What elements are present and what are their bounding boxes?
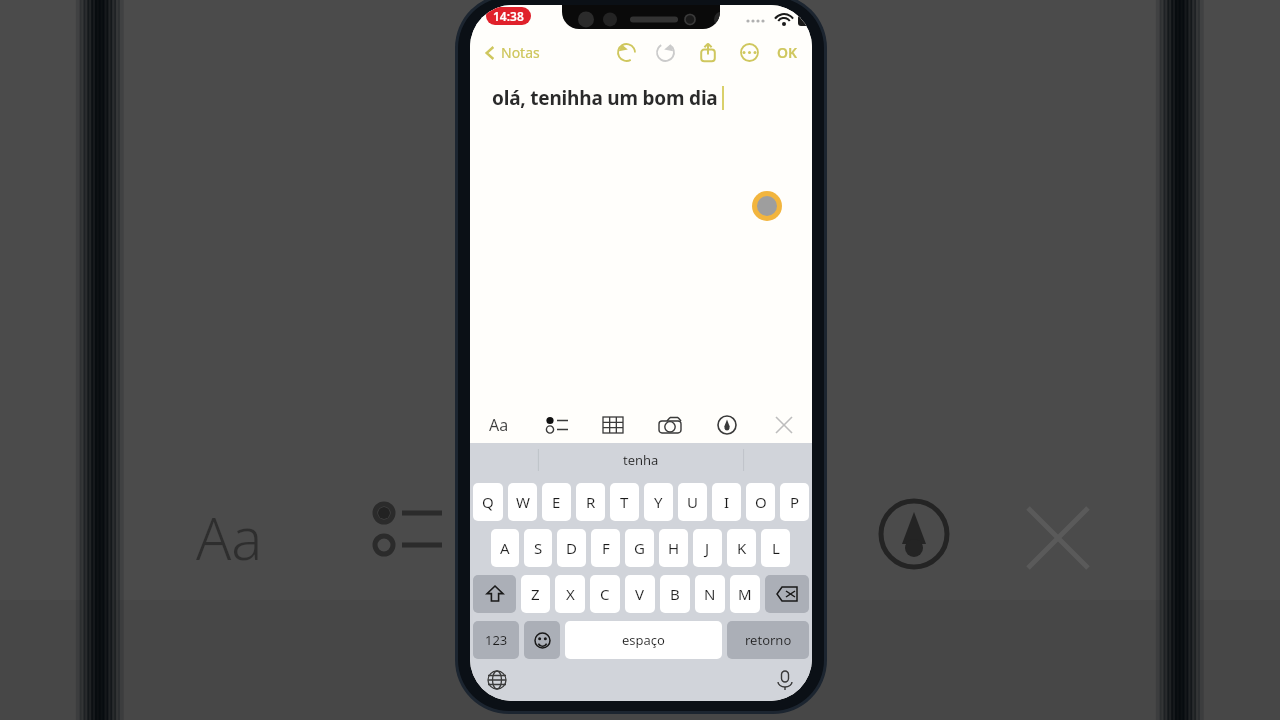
staticText: Aa — [196, 498, 263, 577]
button[interactable]: Close keyboard — [755, 407, 812, 443]
button[interactable]: Undo — [612, 38, 640, 66]
button[interactable]: F — [591, 529, 620, 567]
button[interactable]: retorno — [727, 621, 809, 659]
staticText: 123 — [485, 631, 508, 649]
button[interactable]: A — [491, 529, 519, 567]
button[interactable]: Backspace — [765, 575, 809, 613]
button[interactable]: K — [727, 529, 756, 567]
button[interactable]: Emoji — [524, 621, 560, 659]
staticText: I — [724, 492, 730, 512]
staticText: N — [704, 584, 716, 604]
staticText: 14:38 — [493, 8, 524, 24]
staticText: A — [500, 538, 510, 558]
button[interactable]: D — [557, 529, 586, 567]
button[interactable]: Dictate — [768, 663, 802, 697]
staticText: T — [620, 492, 629, 512]
button[interactable]: G — [625, 529, 654, 567]
button[interactable]: C — [590, 575, 620, 613]
button[interactable]: Shift — [473, 575, 516, 613]
button[interactable]: R — [576, 483, 605, 521]
button[interactable]: B — [660, 575, 690, 613]
staticText: R — [586, 492, 596, 512]
staticText: V — [635, 584, 645, 604]
button[interactable]: Y — [644, 483, 673, 521]
button[interactable]: V — [625, 575, 655, 613]
staticText: olá, tenihha um bom dia — [492, 85, 718, 111]
staticText: H — [668, 538, 680, 558]
staticText: W — [516, 492, 530, 512]
button[interactable]: 123 — [473, 621, 519, 659]
button[interactable]: N — [695, 575, 725, 613]
staticText: OK — [777, 43, 798, 62]
button[interactable]: U — [678, 483, 707, 521]
staticText: U — [687, 492, 698, 512]
staticText: C — [600, 584, 610, 604]
staticText: F — [602, 538, 610, 558]
button[interactable]: L — [761, 529, 790, 567]
button[interactable]: J — [693, 529, 722, 567]
staticText: E — [552, 492, 561, 512]
staticText: O — [755, 492, 767, 512]
staticText: L — [772, 538, 780, 558]
button[interactable]: Change keyboard — [480, 663, 514, 697]
staticText: Y — [654, 492, 663, 512]
staticText: P — [790, 492, 800, 512]
button[interactable]: Redo — [651, 38, 679, 66]
staticText: J — [705, 538, 710, 558]
staticText: G — [634, 538, 645, 558]
staticText: Q — [482, 492, 494, 512]
staticText: D — [566, 538, 577, 558]
staticText: X — [566, 584, 575, 604]
staticText: retorno — [745, 631, 792, 649]
staticText: Z — [531, 584, 540, 604]
button[interactable]: Q — [473, 483, 503, 521]
button[interactable]: Markup — [698, 407, 755, 443]
button[interactable]: Share — [694, 38, 722, 66]
button[interactable]: W — [508, 483, 537, 521]
button[interactable]: Checklist — [527, 407, 584, 443]
button[interactable]: espaço — [565, 621, 722, 659]
staticText: Notas — [501, 43, 540, 62]
button[interactable]: OK — [773, 39, 802, 66]
button[interactable]: O — [746, 483, 775, 521]
button[interactable]: Z — [521, 575, 550, 613]
button[interactable]: More options — [735, 38, 763, 66]
button[interactable]: tenha — [599, 445, 683, 475]
button[interactable]: Camera — [641, 407, 698, 443]
button[interactable]: Insert table — [584, 407, 641, 443]
staticText: M — [738, 584, 752, 604]
button[interactable]: T — [610, 483, 639, 521]
button[interactable]: I — [712, 483, 741, 521]
staticText: B — [670, 584, 680, 604]
staticText: S — [534, 538, 543, 558]
button[interactable]: Notas — [480, 39, 544, 66]
button[interactable]: P — [780, 483, 809, 521]
button[interactable]: X — [555, 575, 585, 613]
button[interactable]: E — [542, 483, 571, 521]
button[interactable]: M — [730, 575, 760, 613]
button[interactable]: H — [659, 529, 688, 567]
staticText: Aa — [489, 414, 509, 436]
staticText: K — [737, 538, 747, 558]
staticText: tenha — [623, 451, 659, 469]
button[interactable]: Format text — [470, 407, 527, 443]
staticText: espaço — [622, 631, 665, 649]
button[interactable]: S — [524, 529, 552, 567]
